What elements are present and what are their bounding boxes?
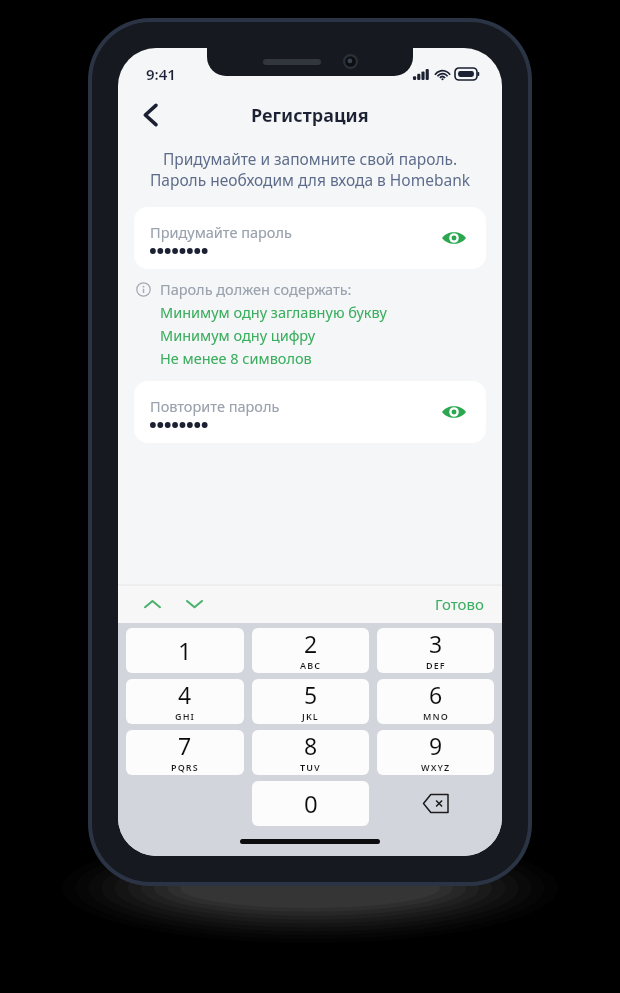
staticText: TUV xyxy=(300,761,321,773)
staticText: 9:41 xyxy=(146,64,176,84)
staticText: WXYZ xyxy=(421,761,451,773)
button[interactable]: Show password xyxy=(436,394,472,430)
staticText: ABC xyxy=(300,659,322,671)
staticText: Не менее 8 символов xyxy=(160,348,312,368)
button[interactable]: Придумайте пароль xyxy=(134,207,486,269)
staticText: 4 xyxy=(178,679,192,710)
button[interactable]: 5 xyxy=(252,679,369,724)
button[interactable]: Готово xyxy=(429,590,490,618)
staticText: Пароль должен содержать: xyxy=(160,279,352,299)
staticText: GHI xyxy=(175,710,195,722)
button[interactable]: 1 xyxy=(126,628,244,673)
button[interactable]: 0 xyxy=(252,781,369,826)
staticText: 0 xyxy=(304,787,318,820)
staticText: Повторите пароль xyxy=(150,396,280,416)
button[interactable]: 8 xyxy=(252,730,369,775)
staticText: 6 xyxy=(429,679,443,710)
staticText: 5 xyxy=(304,679,318,710)
button[interactable]: 4 xyxy=(126,679,244,724)
staticText: Придумайте пароль xyxy=(150,222,292,242)
button[interactable]: 2 xyxy=(252,628,369,673)
button[interactable]: Backspace xyxy=(377,781,494,826)
button[interactable]: 3 xyxy=(377,628,494,673)
staticText: Минимум одну заглавную букву xyxy=(160,302,387,322)
staticText: 1 xyxy=(178,634,192,667)
staticText: Готово xyxy=(435,594,484,614)
button[interactable]: Show password xyxy=(436,220,472,256)
staticText: 3 xyxy=(429,628,443,659)
staticText: 9 xyxy=(429,730,443,761)
staticText: Придумайте и запомните свой пароль. Паро… xyxy=(128,148,492,191)
button[interactable]: Previous field xyxy=(134,586,170,622)
staticText: PQRS xyxy=(171,761,199,773)
button[interactable]: 7 xyxy=(126,730,244,775)
staticText: JKL xyxy=(302,710,319,722)
staticText: 7 xyxy=(178,730,192,761)
staticText: 8 xyxy=(304,730,318,761)
button[interactable]: 9 xyxy=(377,730,494,775)
button[interactable]: 6 xyxy=(377,679,494,724)
button[interactable]: Повторите пароль xyxy=(134,381,486,443)
staticText: Минимум одну цифру xyxy=(160,325,316,345)
staticText: MNO xyxy=(423,710,449,722)
button[interactable]: Next field xyxy=(176,586,212,622)
button[interactable]: Back xyxy=(128,94,172,136)
staticText: Регистрация xyxy=(251,103,369,128)
staticText: DEF xyxy=(426,659,446,671)
staticText: 2 xyxy=(304,628,318,659)
